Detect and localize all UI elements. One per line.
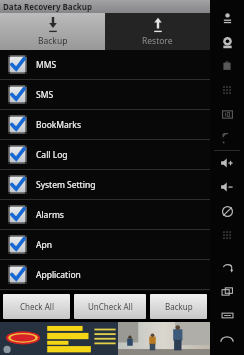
button[interactable]: Volume up [210,151,244,175]
button[interactable]: Keypad [210,78,244,102]
staticText: BookMarks [36,119,81,131]
staticText: Call Log [36,149,68,161]
button[interactable]: Back [210,255,244,279]
button[interactable]: Battery [210,54,244,78]
button[interactable]: Check All [3,294,70,319]
button[interactable]: UnCheck All [74,294,146,319]
staticText: Check All [20,301,54,312]
button[interactable]: Rotate [210,199,244,223]
button[interactable]: More [210,223,244,247]
button[interactable]: Recents [210,279,244,303]
staticText: UnCheck All [88,301,133,312]
staticText: Data Recovery Backup [3,1,93,12]
button[interactable]: Backup [150,294,207,319]
staticText: Apn [36,239,52,251]
button[interactable]: Apn [0,230,210,259]
button[interactable]: Camera [210,30,244,54]
staticText: MMS [36,59,57,71]
staticText: System Setting [36,179,96,191]
button[interactable]: Alarms [0,200,210,229]
staticText: Restore [142,35,173,47]
button[interactable]: Home [210,327,244,351]
staticText: Application [36,269,81,281]
button[interactable]: Cellular [210,126,244,150]
button[interactable]: System Setting [0,170,210,199]
staticText: SMS [36,89,54,101]
button[interactable]: SMS [0,80,210,109]
button[interactable]: Call Log [0,140,210,169]
button[interactable]: Restore [105,13,210,50]
staticText: Alarms [36,209,64,221]
button[interactable]: GPS [210,6,244,30]
button[interactable]: Display [210,102,244,126]
button[interactable]: Backup [0,13,105,50]
button[interactable]: Application [0,260,210,289]
staticText: Backup [38,35,68,47]
button[interactable]: MMS [0,50,210,79]
button[interactable]: BookMarks [0,110,210,139]
button[interactable]: Volume down [210,175,244,199]
staticText: Backup [165,301,193,312]
button[interactable]: Menu [210,303,244,327]
